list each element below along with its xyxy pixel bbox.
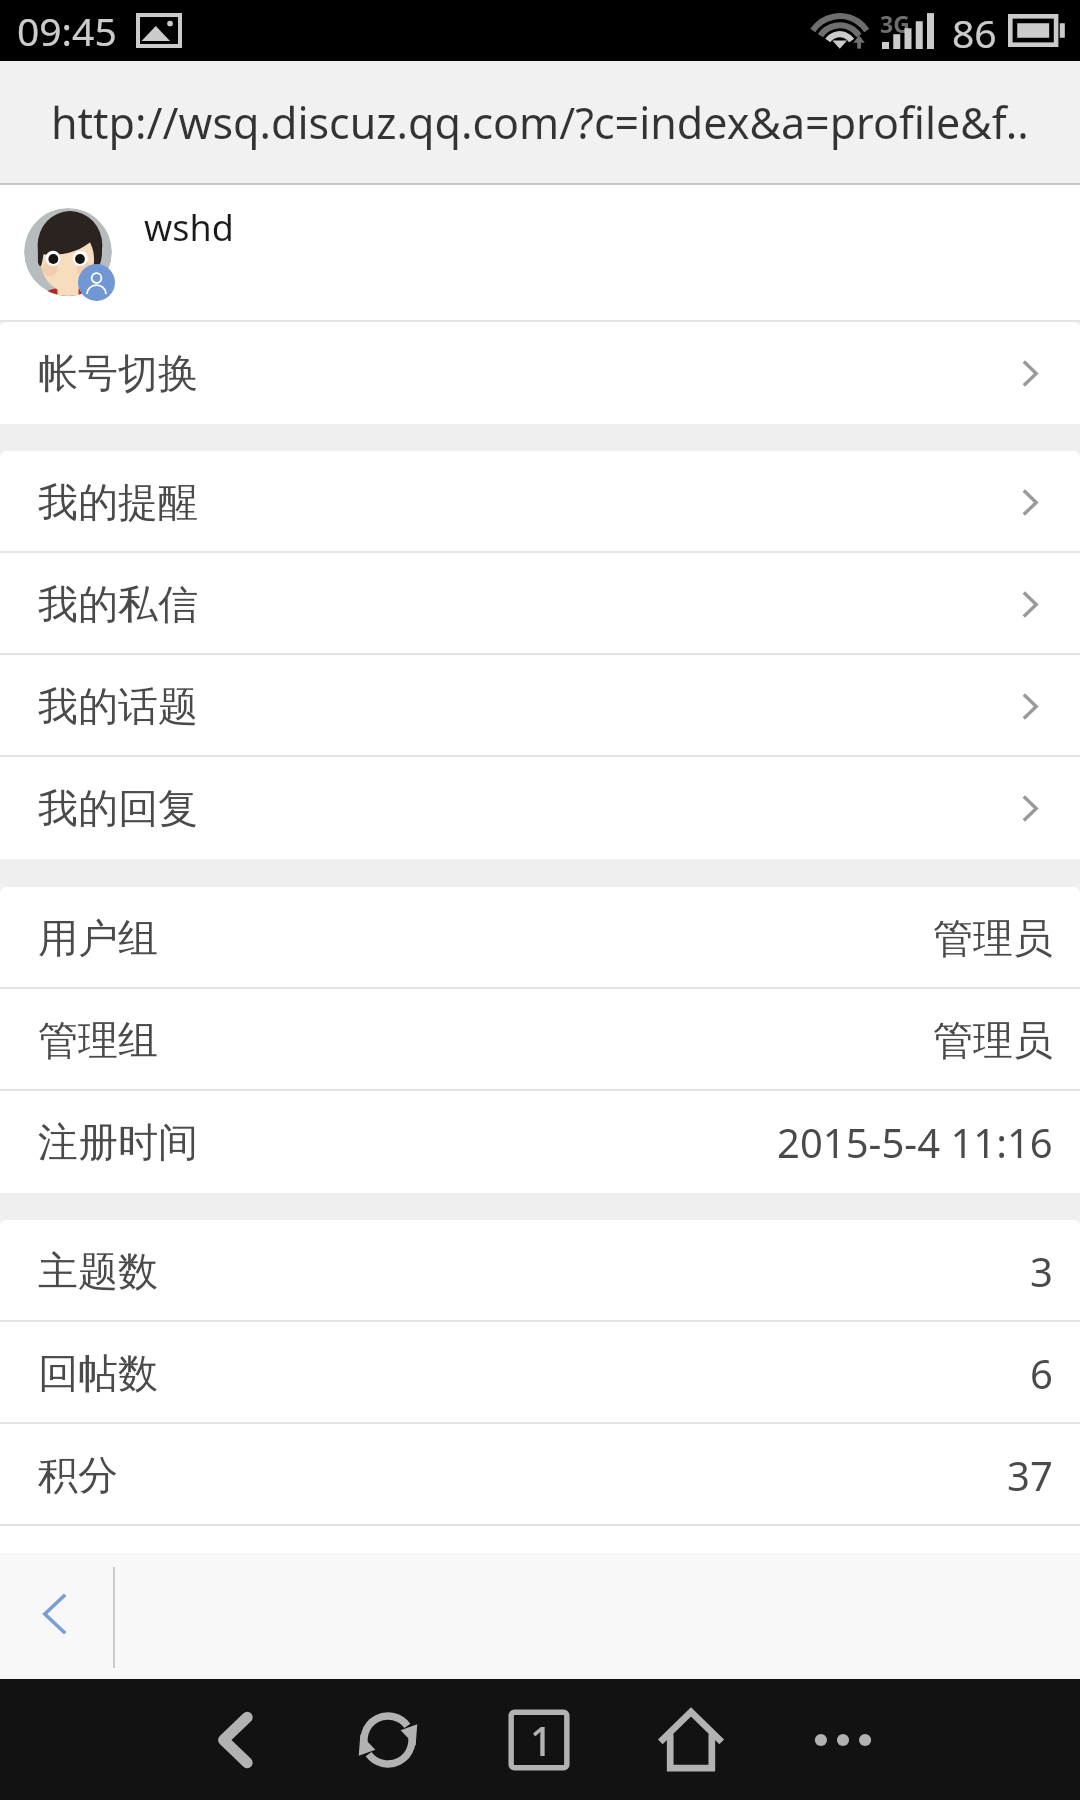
staticText: 09:45 [17,4,117,57]
staticText: 管理员 [933,913,1053,963]
staticText: 6 [1030,1346,1053,1400]
staticText: 管理组 [38,1015,158,1065]
button[interactable]: Back [161,1679,312,1800]
button[interactable]: 主题数 [0,1220,1080,1322]
staticText: 37 [1007,1448,1053,1502]
staticText: 帐号切换 [38,348,198,398]
button[interactable]: 我的私信 [0,553,1080,655]
staticText: 主题数 [38,1246,158,1296]
button[interactable]: 管理组 [0,989,1080,1091]
staticText: 1 [530,1714,553,1767]
button[interactable]: 帐号切换 [0,322,1080,424]
button[interactable]: http://wsq.discuz.qq.com/?c=index&a=prof… [0,61,1080,183]
staticText: 回帖数 [38,1348,158,1398]
staticText: http://wsq.discuz.qq.com/?c=index&a=prof… [51,93,1029,152]
button[interactable]: Tabs [463,1679,615,1800]
staticText: 我的话题 [38,681,198,731]
button[interactable]: More [767,1679,919,1800]
staticText: 3G [880,8,910,39]
button[interactable]: 用户组 [0,887,1080,989]
button[interactable]: Home [615,1679,767,1800]
staticText: 管理员 [933,1015,1053,1065]
staticText: 我的回复 [38,783,198,833]
staticText: 我的私信 [38,579,198,629]
staticText: 3 [1030,1244,1053,1298]
button[interactable]: 我的回复 [0,757,1080,859]
button[interactable]: 注册时间 [0,1091,1080,1193]
staticText: 我的提醒 [38,477,198,527]
staticText: 用户组 [38,913,158,963]
staticText: 2015-5-4 11:16 [777,1115,1053,1169]
button[interactable]: wshd [0,185,1080,322]
button[interactable]: 回帖数 [0,1322,1080,1424]
button[interactable]: 我的提醒 [0,451,1080,553]
staticText: 86 [952,6,997,59]
staticText: 注册时间 [38,1117,198,1167]
button[interactable]: Back [0,1553,109,1679]
button[interactable]: Refresh [312,1679,463,1800]
button[interactable]: 我的话题 [0,655,1080,757]
staticText: wshd [144,203,234,252]
staticText: 积分 [38,1450,118,1500]
button[interactable]: 积分 [0,1424,1080,1526]
